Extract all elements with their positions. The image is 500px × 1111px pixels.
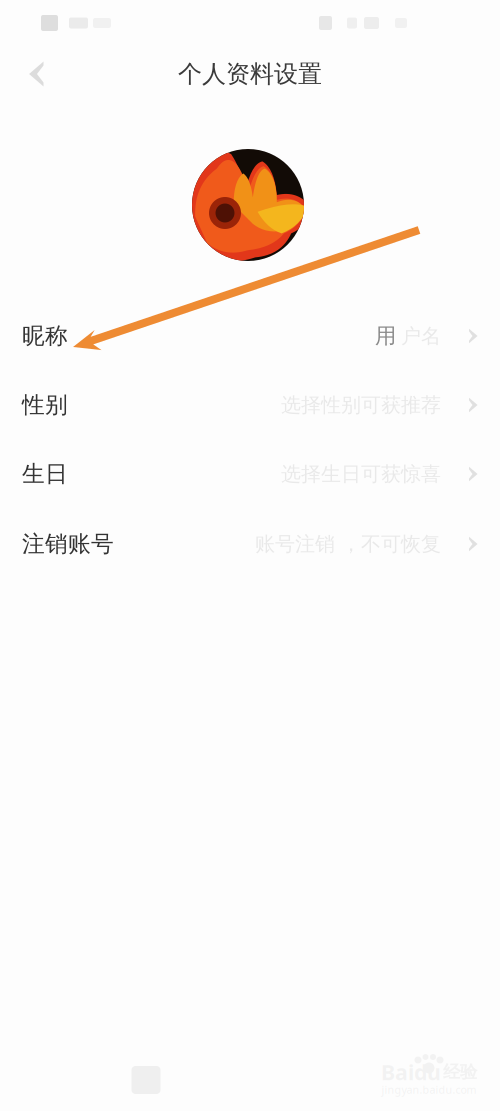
button[interactable]: 更换头像 — [192, 149, 304, 261]
staticText: 选择生日可获惊喜 — [281, 462, 441, 486]
staticText: 用 — [375, 323, 396, 349]
staticText: 经验 — [443, 1061, 477, 1083]
staticText: 户名 — [401, 324, 441, 348]
staticText: 个人资料设置 — [178, 59, 322, 89]
staticText: 注销账号 — [22, 530, 114, 558]
staticText: Baidu — [381, 1058, 441, 1086]
button[interactable]: 返回 — [12, 49, 64, 99]
staticText: 账号注销 ，不可恢复 — [255, 532, 441, 556]
button[interactable]: 个人资料设置 — [130, 52, 370, 96]
staticText: 选择性别可获推荐 — [281, 393, 441, 417]
staticText: 生日 — [22, 460, 68, 488]
button[interactable]: 昵称 — [0, 302, 500, 370]
button[interactable]: 生日 — [0, 440, 500, 508]
button[interactable]: 性别 — [0, 371, 500, 439]
staticText: 性别 — [22, 391, 68, 419]
staticText: 昵称 — [22, 322, 68, 350]
button[interactable]: 注销账号 — [0, 510, 500, 578]
